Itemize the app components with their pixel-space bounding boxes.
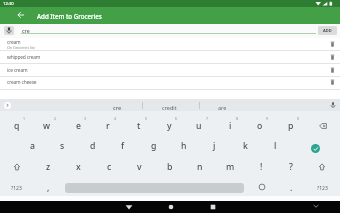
button[interactable]: ? <box>283 159 299 175</box>
staticText: d <box>90 140 96 152</box>
staticText: n <box>197 161 203 173</box>
button[interactable]: w <box>38 118 56 134</box>
staticText: cre <box>22 27 30 34</box>
button[interactable] <box>4 102 11 109</box>
staticText: l <box>274 140 277 152</box>
staticText: b <box>167 161 173 173</box>
staticText: 7 <box>206 116 209 121</box>
staticText: ice cream <box>7 67 28 74</box>
button[interactable] <box>311 201 321 211</box>
staticText: cream cheese <box>7 79 37 86</box>
staticText: o <box>257 120 263 132</box>
button[interactable]: ?123 <box>5 180 27 196</box>
button[interactable]: cre <box>106 102 128 112</box>
button[interactable]: r <box>99 118 117 134</box>
staticText: 6 <box>175 116 178 121</box>
button[interactable]: t <box>130 118 148 134</box>
button[interactable]: x <box>69 159 87 175</box>
staticText: v <box>137 161 142 173</box>
staticText: k <box>243 140 248 152</box>
button[interactable]: h <box>175 138 193 154</box>
staticText: credit <box>162 104 177 111</box>
staticText: e <box>76 120 81 132</box>
button[interactable]: . <box>284 180 298 196</box>
button[interactable]: g <box>145 138 163 154</box>
button[interactable]: z <box>39 159 57 175</box>
staticText: f <box>121 140 125 152</box>
staticText: x <box>76 161 81 173</box>
button[interactable]: e <box>69 118 87 134</box>
staticText: 12:30 <box>3 1 14 7</box>
button[interactable]: credit <box>155 102 183 112</box>
button[interactable]: cream cheese <box>0 76 340 88</box>
button[interactable]: ?123 <box>310 180 334 196</box>
button[interactable] <box>207 201 219 213</box>
button[interactable]: ! <box>253 159 269 175</box>
button[interactable]: q <box>8 118 26 134</box>
button[interactable]: i <box>221 118 239 134</box>
button[interactable] <box>15 9 27 21</box>
staticText: i <box>229 120 232 132</box>
staticText: w <box>43 120 51 132</box>
staticText: 2 <box>54 116 57 121</box>
staticText: cre <box>113 104 122 111</box>
button[interactable]: m <box>221 159 239 175</box>
button[interactable]: f <box>114 138 132 154</box>
staticText: c <box>107 161 112 173</box>
button[interactable]: , <box>40 180 56 196</box>
button[interactable]: a <box>23 138 41 154</box>
button[interactable]: b <box>161 159 179 175</box>
staticText: q <box>14 120 20 132</box>
staticText: h <box>181 140 187 152</box>
button[interactable]: u <box>190 118 208 134</box>
button[interactable]: d <box>84 138 102 154</box>
staticText: Add Item to Groceries <box>37 12 102 20</box>
staticText: . <box>290 182 293 194</box>
button[interactable] <box>10 160 24 174</box>
staticText: ! <box>260 161 263 173</box>
button[interactable]: ADD <box>318 26 337 35</box>
button[interactable]: are <box>211 102 233 112</box>
button[interactable]: n <box>191 159 209 175</box>
staticText: a <box>30 140 35 152</box>
staticText: 3 <box>84 116 87 121</box>
button[interactable] <box>329 101 337 109</box>
button[interactable]: c <box>100 159 118 175</box>
button[interactable]: y <box>160 118 178 134</box>
button[interactable]: cream <box>0 38 340 50</box>
staticText: p <box>288 120 294 132</box>
staticText: cream <box>7 39 21 46</box>
button[interactable]: s <box>53 138 71 154</box>
button[interactable] <box>315 160 329 174</box>
staticText: r <box>106 120 110 132</box>
staticText: are <box>218 104 227 111</box>
staticText: t <box>137 120 141 132</box>
staticText: s <box>60 140 65 152</box>
button[interactable] <box>123 201 135 213</box>
staticText: 1 <box>23 116 26 121</box>
button[interactable] <box>311 144 320 153</box>
button[interactable]: l <box>266 138 284 154</box>
button[interactable]: j <box>205 138 223 154</box>
staticText: 4 <box>114 116 117 121</box>
staticText: m <box>226 161 235 173</box>
button[interactable] <box>4 26 14 35</box>
button[interactable] <box>255 180 269 194</box>
button[interactable] <box>314 118 332 134</box>
button[interactable]: k <box>236 138 254 154</box>
staticText: g <box>151 140 157 152</box>
button[interactable] <box>165 201 177 213</box>
button[interactable]: ice cream <box>0 64 340 76</box>
staticText: 5 <box>145 116 148 121</box>
button[interactable]: p <box>282 118 300 134</box>
staticText: , <box>47 182 50 194</box>
button[interactable]: whipped cream <box>0 51 340 63</box>
staticText: y <box>167 120 172 132</box>
staticText: whipped cream <box>7 54 41 61</box>
staticText: ?123 <box>317 185 328 192</box>
button[interactable]: v <box>130 159 148 175</box>
staticText: ?123 <box>11 185 22 192</box>
staticText: 9 <box>266 116 269 121</box>
button[interactable]: o <box>251 118 269 134</box>
